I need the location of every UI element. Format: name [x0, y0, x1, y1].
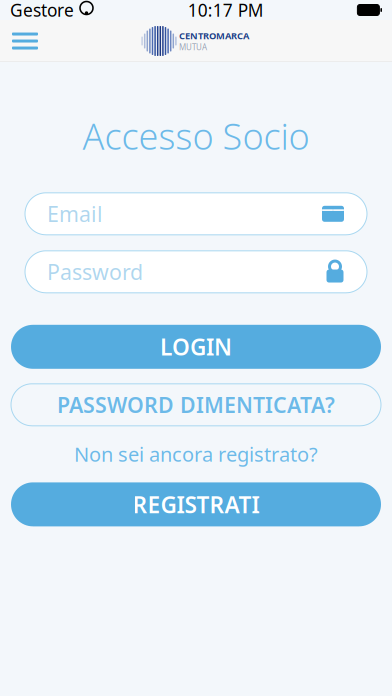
button[interactable]: Non sei ancora registrato? [64, 435, 328, 473]
staticText: CENTROMARCA [179, 29, 249, 42]
staticText: Non sei ancora registrato? [74, 441, 318, 467]
button[interactable]: LOGIN [11, 325, 381, 369]
staticText: Password [47, 258, 143, 286]
staticText: REGISTRATI [132, 489, 259, 519]
button[interactable]: PASSWORD DIMENTICATA? [11, 384, 381, 426]
staticText: Accesso Socio [82, 112, 309, 160]
button[interactable]: REGISTRATI [11, 482, 381, 526]
staticText: MUTUA [179, 42, 207, 52]
staticText: Gestore [10, 0, 74, 21]
staticText: LOGIN [160, 332, 232, 362]
staticText: Email [47, 200, 103, 228]
staticText: PASSWORD DIMENTICATA? [57, 391, 335, 419]
button[interactable]: Menu [0, 24, 50, 57]
staticText: 10:17 PM [188, 0, 264, 21]
